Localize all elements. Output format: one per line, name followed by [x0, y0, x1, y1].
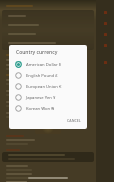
button[interactable]: CANCEL — [61, 116, 87, 125]
button[interactable] — [0, 96, 96, 107]
button[interactable] — [0, 139, 96, 145]
button[interactable] — [0, 165, 96, 171]
button[interactable] — [0, 58, 96, 61]
button[interactable] — [0, 181, 96, 182]
button[interactable]: Selected — [9, 59, 87, 70]
button[interactable] — [0, 78, 96, 85]
other: Not selected — [15, 72, 22, 79]
staticText: Country currency — [16, 49, 58, 56]
button[interactable] — [2, 17, 94, 26]
staticText: European Union € — [26, 84, 62, 90]
button[interactable]: Not selected — [9, 103, 87, 114]
other: Selected — [15, 61, 22, 68]
button[interactable]: Not selected — [9, 70, 87, 81]
button[interactable] — [0, 85, 96, 96]
other: Not selected — [15, 83, 22, 90]
button[interactable] — [2, 13, 94, 17]
staticText: CANCEL — [67, 118, 81, 123]
staticText: Korean Won ₩ — [26, 106, 54, 112]
button[interactable] — [2, 26, 94, 35]
other: Not selected — [15, 105, 22, 112]
button[interactable] — [0, 107, 96, 118]
button[interactable] — [0, 64, 96, 70]
staticText: English Pound £ — [26, 73, 58, 79]
button[interactable] — [0, 173, 96, 179]
button[interactable] — [2, 35, 94, 44]
button[interactable]: Not selected — [9, 81, 87, 92]
staticText: Japanese Yen ¥ — [26, 95, 56, 101]
other: Not selected — [15, 94, 22, 101]
button[interactable]: Not selected — [9, 92, 87, 103]
staticText: American Dollar $ — [26, 62, 62, 68]
